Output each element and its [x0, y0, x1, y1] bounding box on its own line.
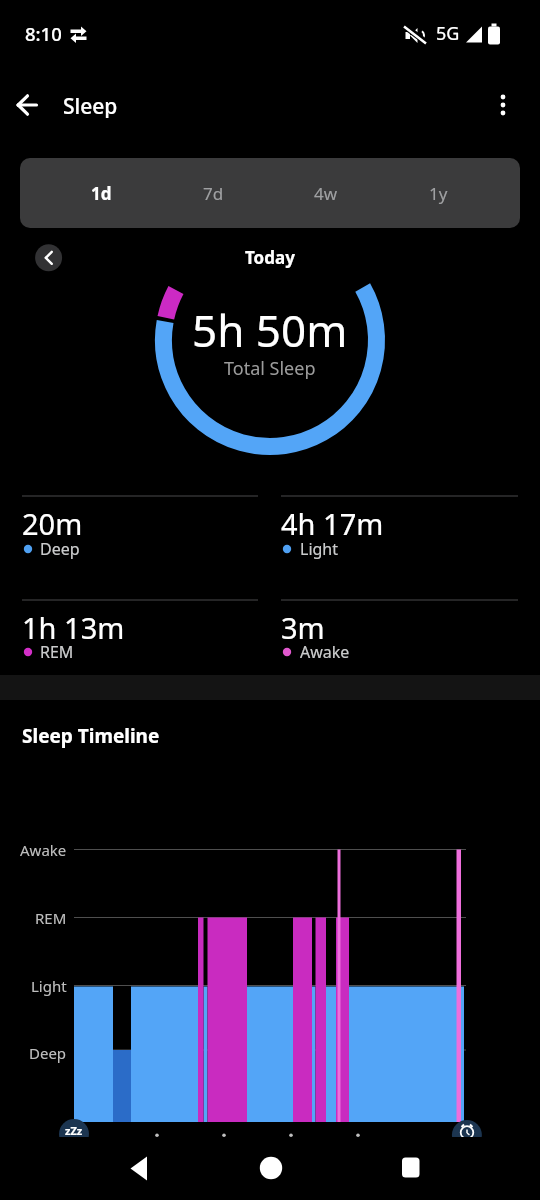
staticText: Total Sleep	[224, 356, 316, 380]
staticText: 8:10	[25, 21, 62, 46]
staticText: 4h 17m	[281, 504, 384, 540]
staticText: 1y	[429, 182, 448, 205]
button[interactable]	[488, 85, 516, 125]
staticText: REM	[35, 908, 67, 928]
staticText: 7d	[203, 182, 224, 205]
staticText: 20m	[22, 504, 83, 540]
staticText: 1h 13m	[22, 608, 125, 644]
staticText: 5G	[436, 21, 460, 46]
staticText: 1d	[91, 182, 112, 205]
staticText: 4w	[314, 182, 338, 205]
staticText: zZz	[65, 1123, 83, 1138]
button[interactable]	[115, 1147, 160, 1189]
button[interactable]	[58, 1117, 90, 1137]
staticText: REM	[40, 641, 74, 663]
button[interactable]	[12, 88, 44, 122]
staticText: Sleep Timeline	[22, 723, 160, 749]
staticText: Awake	[20, 840, 67, 860]
staticText: Light	[300, 538, 339, 560]
staticText: Deep	[29, 1043, 67, 1063]
staticText: Light	[31, 976, 67, 996]
button[interactable]: 1d	[45, 158, 157, 228]
button[interactable]	[248, 1147, 293, 1189]
staticText: 5h 50m	[192, 300, 348, 356]
staticText: Deep	[40, 538, 80, 560]
button[interactable]: 1y	[382, 158, 495, 228]
button[interactable]	[388, 1147, 433, 1189]
staticText: Today	[245, 246, 295, 269]
staticText: 3m	[281, 608, 325, 644]
button[interactable]	[35, 244, 63, 272]
staticText: Awake	[300, 641, 350, 663]
button[interactable]: 7d	[157, 158, 269, 228]
button[interactable]: 4w	[269, 158, 382, 228]
staticText: Sleep	[63, 92, 118, 118]
button[interactable]	[451, 1117, 483, 1137]
